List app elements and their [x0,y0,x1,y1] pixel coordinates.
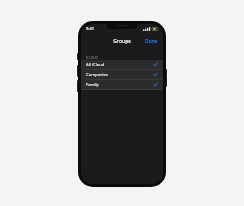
other: Selected [153,62,158,67]
staticText: Groups [113,38,131,45]
button[interactable]: Family [81,80,163,89]
staticText: Companies [86,72,109,78]
staticText: Family [86,82,99,88]
other: Selected [153,72,158,77]
button[interactable]: Companies [81,70,163,79]
staticText: ICLOUD [86,56,98,60]
other: Selected [153,82,158,87]
staticText: Done [145,38,158,45]
button[interactable]: Done [140,35,163,48]
staticText: 9:41 [86,26,94,31]
staticText: All iCloud [86,62,105,68]
button[interactable]: All iCloud [81,60,163,69]
